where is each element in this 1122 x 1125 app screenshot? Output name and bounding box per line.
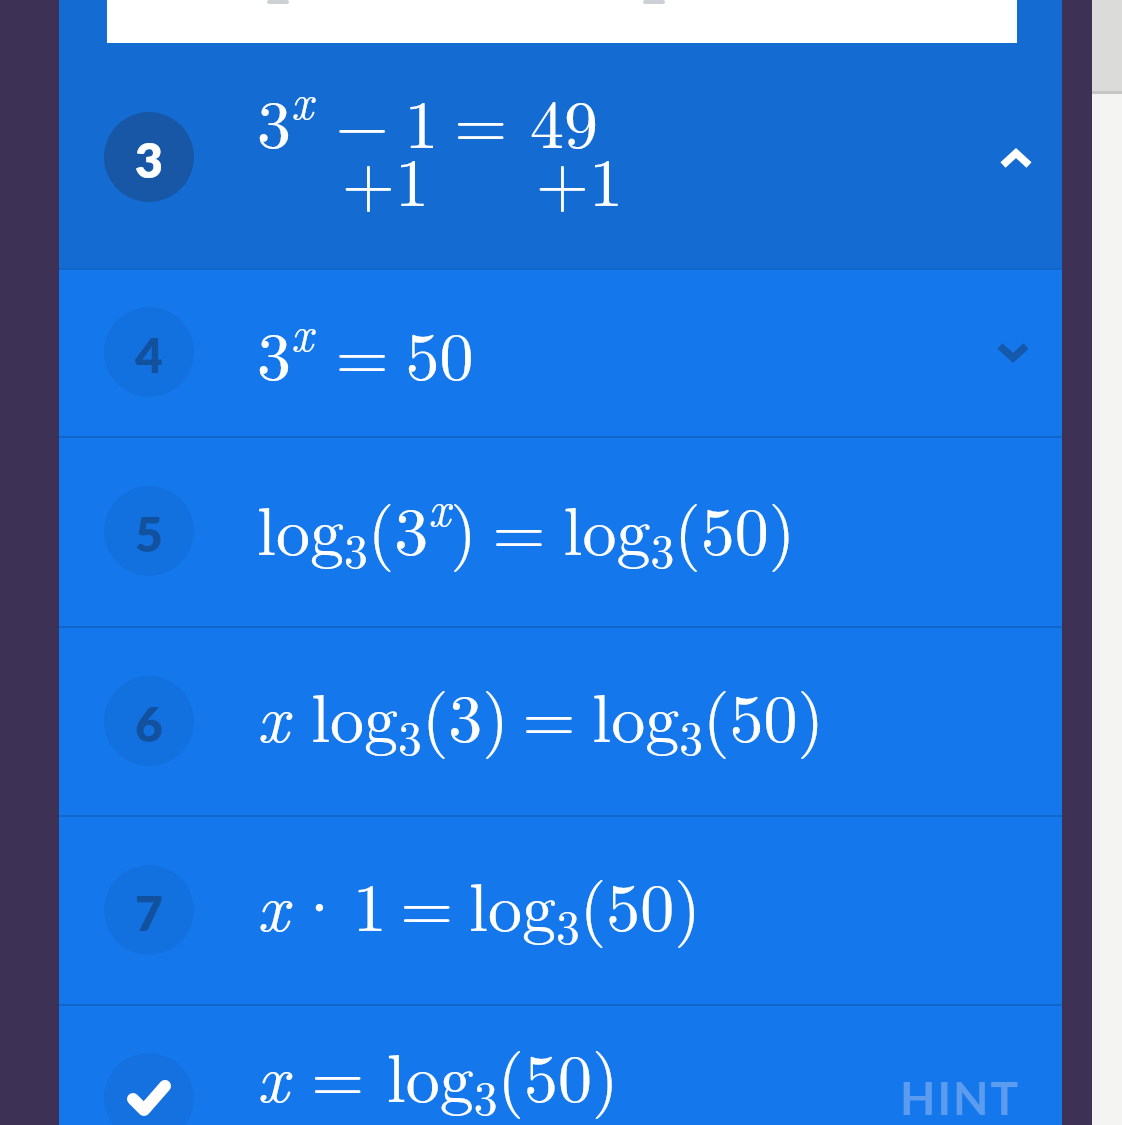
staticText: +1 <box>536 129 623 225</box>
staticText: 3x = 50 <box>257 297 474 400</box>
staticText: 3 <box>135 131 163 189</box>
staticText: x log3(3) = log3(50) <box>257 665 824 768</box>
staticText: 4 <box>135 326 163 384</box>
button[interactable]: 5 <box>59 436 1062 626</box>
button[interactable]: 3 <box>59 0 1062 268</box>
staticText: 6 <box>135 695 163 753</box>
button[interactable]: x = log3(50) <box>59 1004 1062 1125</box>
button[interactable]: 7 <box>59 815 1062 1004</box>
button[interactable]: HINT <box>900 1070 1021 1125</box>
staticText: +1 <box>342 129 429 225</box>
button[interactable] <box>107 0 1017 43</box>
staticText: 7 <box>135 884 163 942</box>
button[interactable]: 4 <box>59 268 1062 436</box>
button[interactable] <box>993 139 1039 179</box>
staticText: 3x − 1 = 49 <box>257 65 598 168</box>
staticText: x = log3(50) <box>257 1025 619 1125</box>
staticText: x · 1 = log3(50) <box>257 854 701 957</box>
staticText: log3(3x) = log3(50) <box>257 472 796 582</box>
button[interactable]: 6 <box>59 626 1062 815</box>
staticText: 5 <box>135 505 163 563</box>
